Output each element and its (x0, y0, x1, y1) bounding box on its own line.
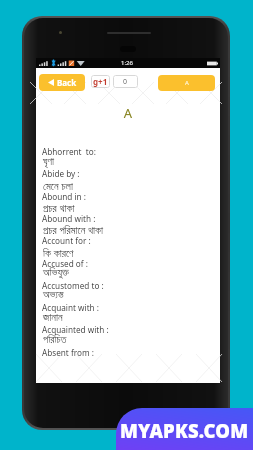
staticText: Acquainted with : (42, 324, 109, 335)
staticText: জানান (43, 313, 63, 324)
staticText: A (185, 79, 189, 87)
staticText: Abound in : (42, 191, 86, 202)
staticText: g+1 (93, 76, 108, 87)
staticText: Account for : (42, 235, 91, 246)
staticText: অভিযুক্ত (43, 268, 69, 279)
staticText: মেনে চলা (43, 179, 73, 190)
button[interactable]: Alphabet A (158, 75, 215, 91)
button[interactable]: Back (39, 74, 85, 91)
staticText: প্রচুর থাকা (43, 201, 75, 212)
staticText: Abound with : (42, 213, 96, 224)
staticText: Acquaint with : (42, 302, 99, 313)
staticText: 0 (123, 77, 128, 87)
staticText: Accused of : (42, 258, 88, 269)
button[interactable]: g+1 (91, 75, 110, 88)
staticText: পরিচিত (43, 335, 67, 346)
staticText: 1:26 (121, 59, 133, 67)
staticText: Accustomed to : (42, 280, 104, 291)
staticText: ঘৃণা (43, 157, 55, 168)
staticText: কি কারণে (43, 246, 74, 257)
staticText: Abhorrent to: (42, 146, 96, 157)
staticText: প্রচুর পরিমানে থাকা (43, 223, 104, 234)
staticText: MYAPKS.COM (120, 418, 249, 443)
staticText: Abide by : (42, 168, 80, 179)
staticText: Absent from : (42, 347, 94, 358)
staticText: A (36, 104, 220, 122)
staticText: Back (57, 77, 77, 88)
staticText: অভ্যস্ত (43, 290, 64, 301)
